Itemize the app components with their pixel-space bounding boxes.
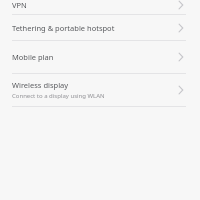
button[interactable]: Tethering & portable hotspot bbox=[0, 15, 200, 40]
staticText: Mobile plan bbox=[12, 52, 54, 62]
button[interactable]: Mobile plan bbox=[0, 41, 200, 73]
staticText: Tethering & portable hotspot bbox=[12, 23, 115, 33]
button[interactable]: VPN bbox=[0, 0, 200, 14]
button[interactable]: Wireless display bbox=[0, 74, 200, 106]
staticText: Connect to a display using WLAN bbox=[12, 92, 105, 100]
staticText: VPN bbox=[12, 0, 27, 10]
staticText: Wireless display bbox=[12, 80, 69, 90]
